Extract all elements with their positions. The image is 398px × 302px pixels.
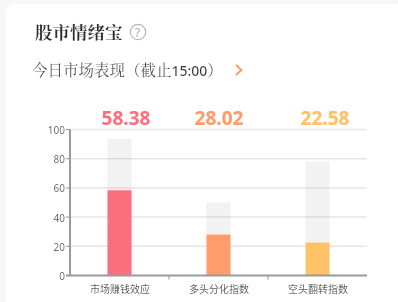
staticText: 28.02: [179, 105, 259, 131]
button[interactable]: 股市情绪宝: [35, 19, 147, 44]
staticText: 多头分化指数: [174, 281, 264, 295]
staticText: 空头翻转指数: [273, 281, 363, 295]
staticText: ?: [135, 24, 141, 40]
staticText: 80: [25, 152, 65, 166]
button[interactable]: 今日市场表现（截止15:00）: [32, 58, 245, 80]
staticText: 22.58: [285, 105, 365, 131]
staticText: 58.38: [86, 105, 166, 131]
staticText: 今日市场表现（截止15:00）: [32, 58, 223, 80]
staticText: 100: [25, 123, 65, 137]
other: Help: [129, 23, 147, 41]
staticText: 20: [25, 240, 65, 254]
staticText: 0: [25, 269, 65, 283]
staticText: 60: [25, 181, 65, 195]
staticText: 市场赚钱效应: [75, 281, 165, 295]
staticText: 40: [25, 211, 65, 225]
staticText: 股市情绪宝: [35, 19, 123, 44]
